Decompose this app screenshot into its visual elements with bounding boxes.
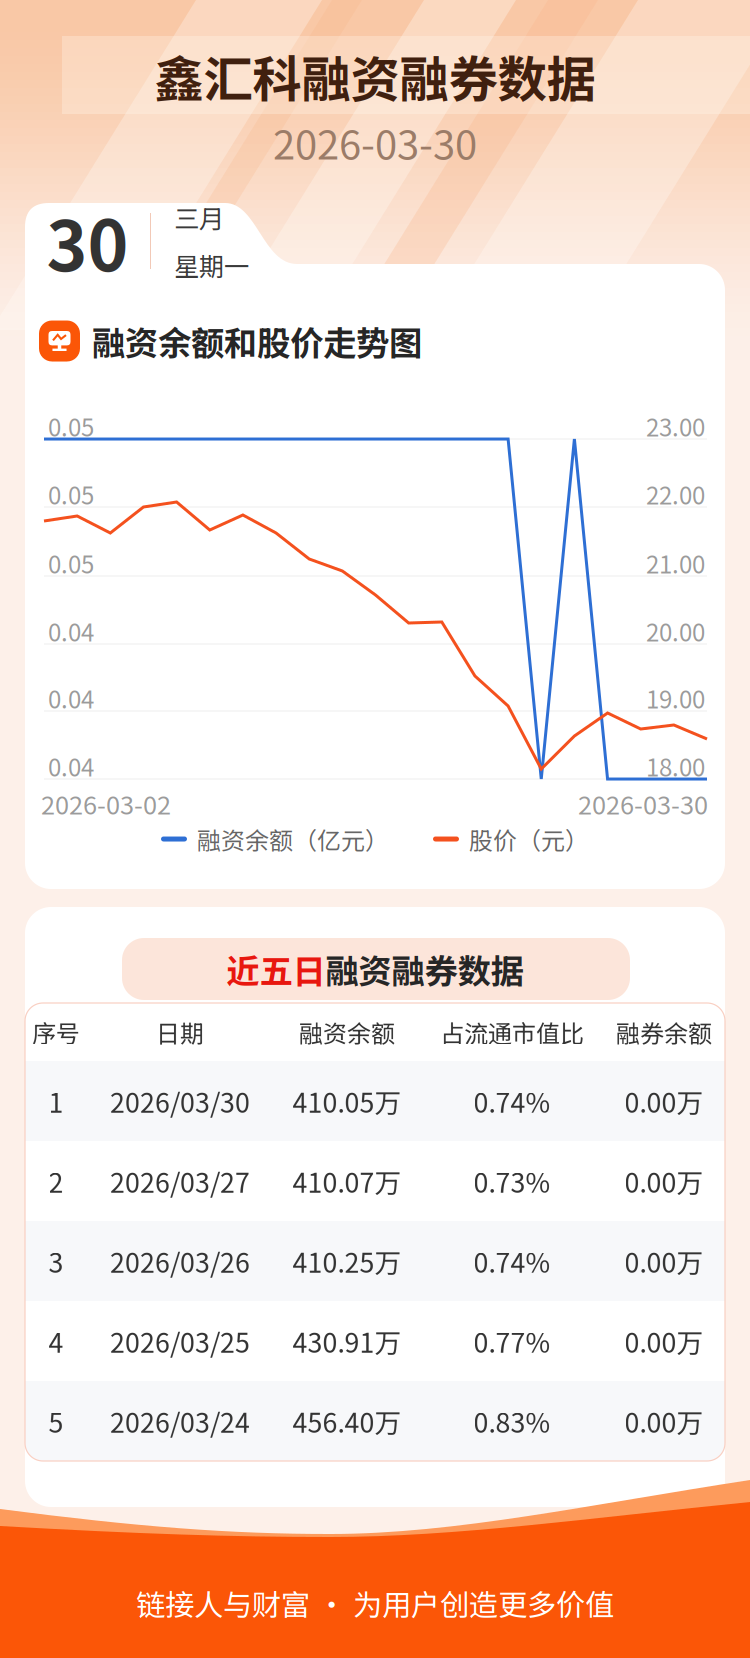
staticText: 股价（元） — [469, 822, 589, 856]
staticText: 410.07万 — [292, 1162, 401, 1200]
staticText: 日期 — [156, 1015, 204, 1049]
staticText: 0.05 — [48, 409, 94, 443]
staticText: 22.00 — [646, 477, 705, 511]
staticText: 23.00 — [646, 409, 705, 443]
staticText: 430.91万 — [292, 1322, 401, 1360]
staticText: 0.00万 — [624, 1162, 703, 1200]
staticText: 0.00万 — [624, 1242, 703, 1280]
staticText: 融资余额 — [299, 1015, 395, 1049]
staticText: 30 — [46, 191, 128, 291]
staticText: 融资余额和股价走势图 — [92, 317, 422, 365]
staticText: 2026-03-30 — [578, 785, 708, 822]
staticText: 4 — [48, 1322, 63, 1360]
staticText: 三月 — [174, 199, 224, 235]
staticText: 2026/03/27 — [110, 1162, 250, 1200]
staticText: 0.04 — [48, 681, 94, 715]
staticText: 410.25万 — [292, 1242, 401, 1280]
staticText: 序号 — [32, 1015, 80, 1049]
staticText: 近五日 — [226, 945, 325, 993]
staticText: 融资融券数据 — [325, 945, 523, 993]
staticText: 456.40万 — [292, 1402, 401, 1440]
staticText: 0.00万 — [624, 1082, 703, 1120]
staticText: 2026-03-02 — [41, 785, 171, 822]
staticText: 2 — [48, 1162, 63, 1200]
staticText: 5 — [48, 1402, 63, 1440]
staticText: 0.74% — [473, 1242, 550, 1280]
staticText: 19.00 — [646, 681, 705, 715]
staticText: 0.83% — [473, 1402, 550, 1440]
staticText: 鑫汇科融资融券数据 — [154, 40, 595, 112]
staticText: 0.77% — [473, 1322, 550, 1360]
staticText: 0.74% — [473, 1082, 550, 1120]
staticText: 0.04 — [48, 749, 94, 783]
staticText: 20.00 — [646, 614, 705, 648]
staticText: 0.05 — [48, 477, 94, 511]
staticText: 融券余额 — [616, 1015, 712, 1049]
staticText: 星期一 — [174, 246, 249, 283]
staticText: 链接人与财富 · 为用户创造更多价值 — [136, 1582, 614, 1624]
staticText: 2026/03/24 — [110, 1402, 250, 1440]
staticText: 2026/03/26 — [110, 1242, 250, 1280]
staticText: 2026-03-30 — [273, 113, 477, 171]
staticText: 融资余额（亿元） — [197, 822, 389, 856]
staticText: 0.05 — [48, 546, 94, 580]
staticText: 0.00万 — [624, 1322, 703, 1360]
staticText: 0.73% — [473, 1162, 550, 1200]
staticText: 2026/03/25 — [110, 1322, 250, 1360]
staticText: 2026/03/30 — [110, 1082, 250, 1120]
staticText: 1 — [48, 1082, 63, 1120]
staticText: 21.00 — [646, 546, 705, 580]
staticText: 410.05万 — [292, 1082, 401, 1120]
staticText: 3 — [48, 1242, 63, 1280]
staticText: 占流通市值比 — [440, 1015, 584, 1049]
staticText: 0.04 — [48, 614, 94, 648]
staticText: 0.00万 — [624, 1402, 703, 1440]
staticText: 18.00 — [646, 749, 705, 783]
